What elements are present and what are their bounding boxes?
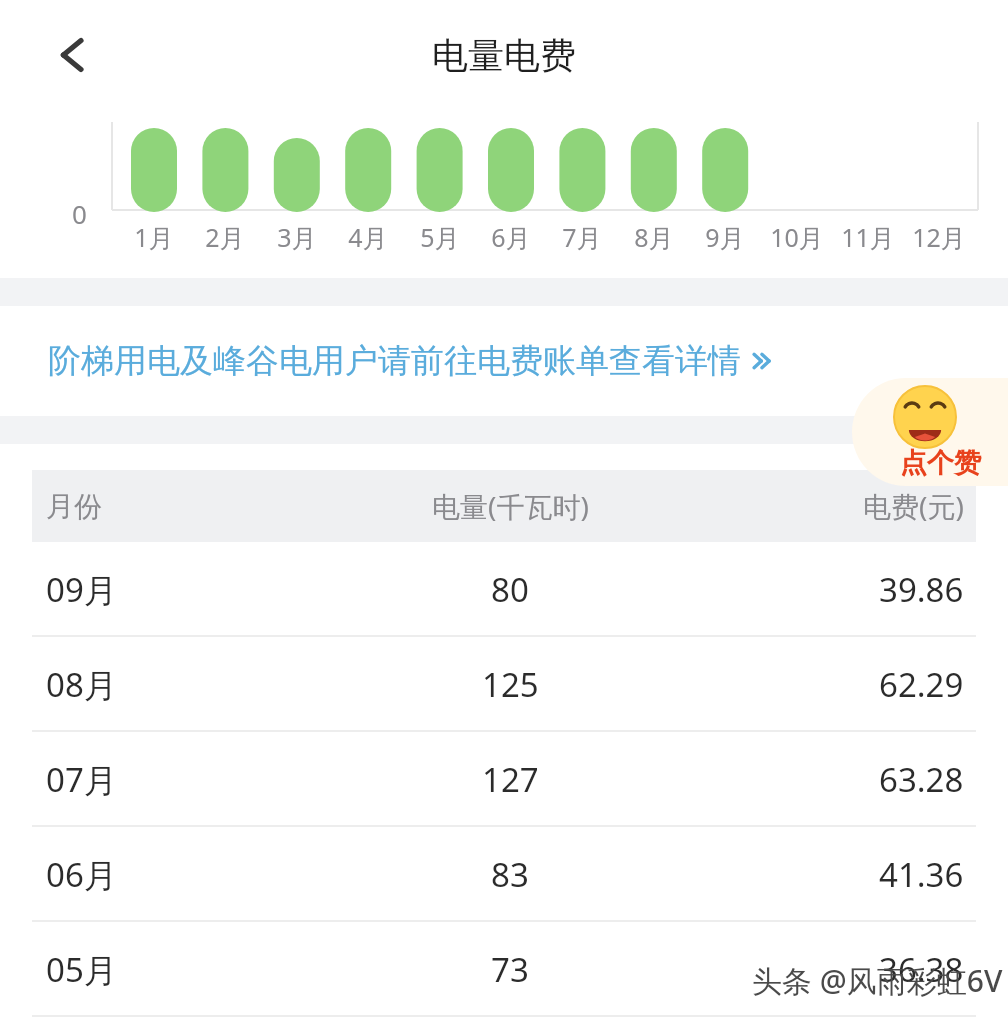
staticText: 电量电费 bbox=[432, 33, 576, 78]
staticText: 63.28 bbox=[879, 757, 964, 802]
button[interactable]: Back bbox=[40, 22, 106, 88]
staticText: 83 bbox=[491, 852, 529, 897]
staticText: 39.86 bbox=[879, 567, 964, 612]
staticText: 3月 bbox=[277, 220, 317, 254]
staticText: 08月 bbox=[46, 662, 117, 707]
staticText: 7月 bbox=[562, 220, 602, 254]
staticText: 62.29 bbox=[879, 662, 964, 707]
staticText: 11月 bbox=[841, 220, 895, 254]
staticText: 9月 bbox=[705, 220, 745, 254]
staticText: 电量(千瓦时) bbox=[432, 487, 589, 525]
staticText: 80 bbox=[491, 567, 529, 612]
button[interactable]: 07月 bbox=[0, 732, 1008, 827]
staticText: 点个赞 bbox=[900, 446, 981, 480]
staticText: 73 bbox=[491, 947, 529, 992]
staticText: 1月 bbox=[134, 220, 174, 254]
staticText: 头条 @风雨彩虹6V bbox=[752, 960, 1003, 1001]
button[interactable]: 阶梯用电及峰谷电用户请前往电费账单查看详情 bbox=[0, 306, 1008, 416]
staticText: 10月 bbox=[770, 220, 824, 254]
staticText: 06月 bbox=[46, 852, 117, 897]
button[interactable]: 09月 bbox=[0, 542, 1008, 637]
staticText: 12月 bbox=[912, 220, 966, 254]
other: 点个赞 bbox=[852, 378, 1008, 486]
button[interactable]: 05月 bbox=[0, 922, 1008, 1017]
staticText: 09月 bbox=[46, 567, 117, 612]
button[interactable]: 06月 bbox=[0, 827, 1008, 922]
staticText: 05月 bbox=[46, 947, 117, 992]
staticText: 6月 bbox=[491, 220, 531, 254]
staticText: 月份 bbox=[46, 489, 102, 524]
staticText: 8月 bbox=[634, 220, 674, 254]
staticText: 阶梯用电及峰谷电用户请前往电费账单查看详情 bbox=[48, 340, 741, 382]
staticText: 电费(元) bbox=[863, 487, 964, 525]
button[interactable]: 08月 bbox=[0, 637, 1008, 732]
staticText: 127 bbox=[482, 757, 539, 802]
staticText: 4月 bbox=[348, 220, 388, 254]
staticText: 41.36 bbox=[879, 852, 964, 897]
staticText: 5月 bbox=[420, 220, 460, 254]
staticText: 0 bbox=[72, 196, 87, 231]
staticText: 07月 bbox=[46, 757, 117, 802]
staticText: 2月 bbox=[205, 220, 245, 254]
staticText: 125 bbox=[482, 662, 539, 707]
staticText: 36.38 bbox=[879, 947, 964, 992]
